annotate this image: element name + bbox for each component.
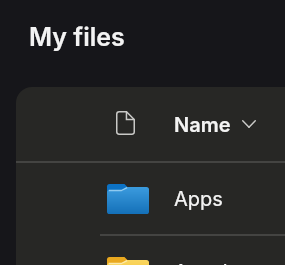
button[interactable]: File type bbox=[16, 87, 285, 161]
staticText: Apps bbox=[174, 187, 223, 211]
staticText: Name bbox=[174, 113, 231, 137]
button[interactable]: Apps bbox=[16, 163, 285, 234]
other: Sort by name bbox=[242, 120, 256, 128]
staticText: Attachments bbox=[174, 260, 285, 265]
other: File type bbox=[116, 111, 135, 135]
staticText: My files bbox=[29, 22, 125, 52]
button[interactable]: Attachments bbox=[16, 236, 285, 265]
